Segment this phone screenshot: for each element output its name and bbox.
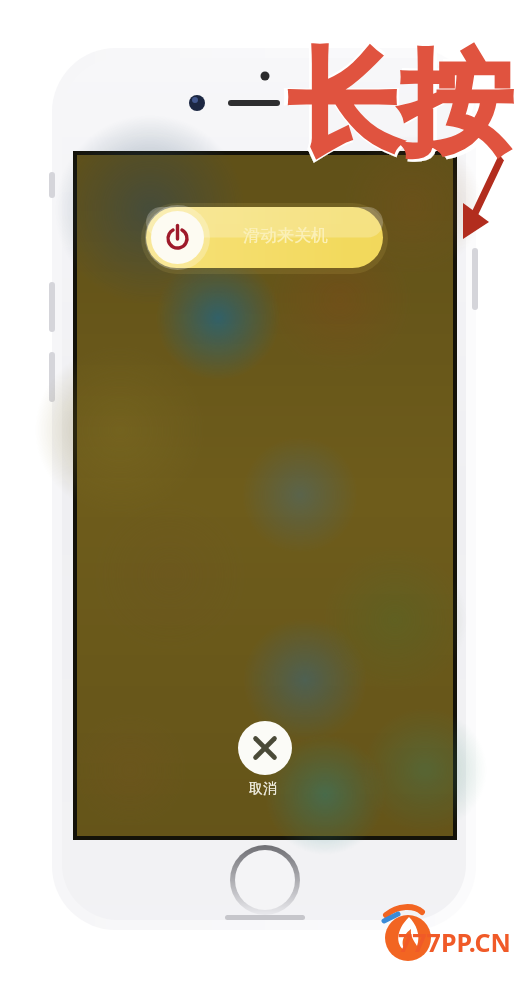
button[interactable]: Cancel [238,721,292,775]
staticText: 777PP.CN [398,925,511,959]
staticText: 滑动来关机 [243,225,328,246]
staticText: 取消 [249,780,277,798]
staticText: 长按 [284,30,520,179]
button[interactable]: Slide to power off [146,207,383,268]
staticText: 长按 [288,34,512,175]
